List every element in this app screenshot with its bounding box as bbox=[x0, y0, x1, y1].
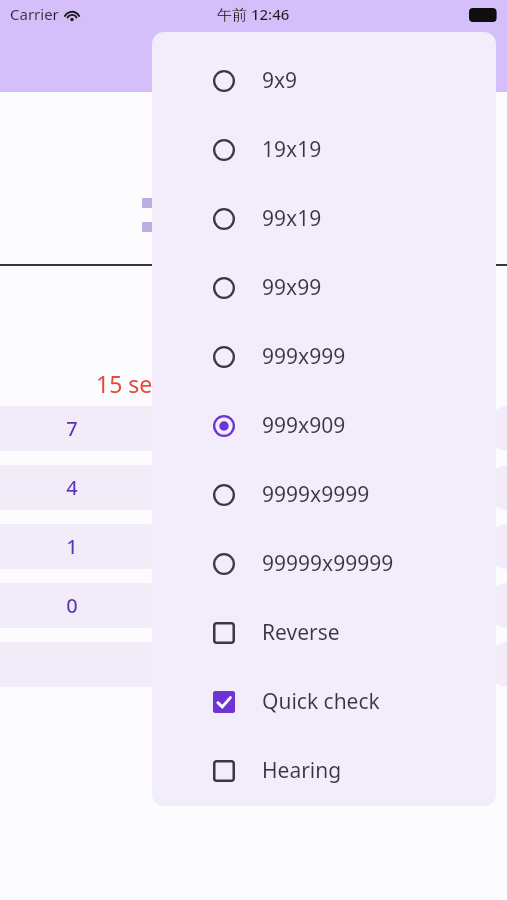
button[interactable]: 99x99 bbox=[152, 253, 496, 322]
button[interactable]: Quick check bbox=[152, 667, 496, 736]
staticText: 99x19 bbox=[262, 204, 322, 233]
button[interactable]: Reverse bbox=[152, 598, 496, 667]
button[interactable]: 19x19 bbox=[152, 115, 496, 184]
button[interactable]: 9999x9999 bbox=[152, 460, 496, 529]
button[interactable]: Hearing bbox=[152, 736, 496, 805]
button[interactable]: 0 bbox=[0, 583, 170, 628]
staticText: 999x909 bbox=[262, 411, 346, 440]
button[interactable]: 999x909 bbox=[152, 391, 496, 460]
staticText: Quick check bbox=[262, 687, 380, 716]
staticText: 0 bbox=[66, 592, 78, 619]
staticText: 9999x9999 bbox=[262, 480, 370, 509]
staticText: 9x9 bbox=[262, 66, 298, 95]
staticText: 999x999 bbox=[262, 342, 346, 371]
staticText: 午前 12:46 bbox=[217, 4, 290, 24]
staticText: 99x99 bbox=[262, 273, 322, 302]
staticText: Carrier bbox=[10, 4, 59, 24]
button[interactable]: 4 bbox=[0, 465, 170, 510]
staticText: 4 bbox=[66, 474, 78, 501]
button[interactable]: 99x19 bbox=[152, 184, 496, 253]
staticText: 19x19 bbox=[262, 135, 322, 164]
staticText: Hearing bbox=[262, 756, 342, 785]
button[interactable]: 999x999 bbox=[152, 322, 496, 391]
staticText: Reverse bbox=[262, 618, 340, 647]
staticText: 1 bbox=[66, 533, 78, 560]
button[interactable]: 99999x99999 bbox=[152, 529, 496, 598]
staticText: 99999x99999 bbox=[262, 549, 394, 578]
staticText: 15 se bbox=[96, 368, 153, 399]
staticText: 7 bbox=[66, 415, 78, 442]
button[interactable]: 7 bbox=[0, 406, 170, 451]
button[interactable]: 9x9 bbox=[152, 46, 496, 115]
button[interactable]: 1 bbox=[0, 524, 170, 569]
